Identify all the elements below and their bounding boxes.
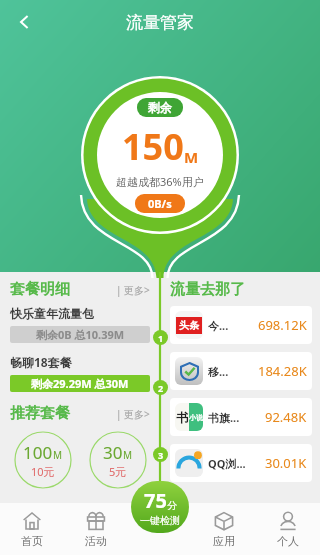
staticText: 一键检测 (140, 514, 180, 527)
staticText: 100 (23, 441, 53, 464)
staticText: 畅聊18套餐 (10, 354, 72, 370)
staticText: M (123, 448, 133, 462)
staticText: 5元 (109, 464, 127, 479)
staticText: 小说 (189, 413, 203, 422)
staticText: 活动 (85, 534, 107, 548)
staticText: 3 (158, 449, 164, 461)
staticText: M (184, 147, 199, 167)
button[interactable]: 75 (131, 481, 189, 533)
button[interactable]: 应用 (192, 503, 256, 555)
staticText: 应用 (213, 534, 235, 548)
staticText: 今... (208, 318, 229, 333)
button[interactable]: 推荐套餐 (10, 404, 150, 423)
staticText: 剩余0B 总10.39M (36, 327, 125, 342)
button[interactable]: 剩余29.29M 总30M (10, 375, 150, 392)
button[interactable]: QQ浏... (170, 444, 312, 482)
staticText: 30.01K (265, 454, 307, 472)
staticText: 移... (208, 364, 229, 379)
staticText: 剩余29.29M 总30M (31, 376, 129, 391)
button[interactable]: 0B/s (148, 196, 172, 211)
staticText: 698.12K (258, 316, 307, 334)
button[interactable]: 活动 (64, 503, 128, 555)
button[interactable]: 剩余0B 总10.39M (10, 326, 150, 343)
button[interactable]: 30 (85, 429, 150, 491)
staticText: 流量去那了 (170, 280, 245, 299)
staticText: 92.48K (265, 408, 307, 426)
staticText: 书旗... (208, 410, 240, 425)
button[interactable]: 首页 (0, 503, 64, 555)
staticText: 75 (144, 487, 167, 514)
staticText: 分 (167, 499, 177, 512)
staticText: QQ浏... (208, 456, 246, 471)
staticText: 首页 (21, 534, 43, 548)
staticText: 超越成都36%用户 (116, 174, 204, 189)
button[interactable]: 个人 (256, 503, 320, 555)
staticText: 推荐套餐 (10, 404, 70, 423)
staticText: 0B/s (148, 196, 172, 211)
staticText: 150 (122, 122, 184, 171)
button[interactable]: 100 (10, 429, 75, 491)
staticText: 流量管家 (126, 12, 194, 33)
staticText: 头条 (179, 319, 199, 332)
staticText: 书 (176, 410, 188, 425)
button[interactable]: Back (4, 2, 44, 42)
button[interactable]: 移... (170, 352, 312, 390)
staticText: M (53, 448, 63, 462)
button[interactable]: 套餐明细 (10, 280, 150, 299)
staticText: 30 (103, 441, 123, 464)
staticText: | 更多> (116, 407, 150, 421)
staticText: 1 (158, 332, 164, 344)
staticText: 10元 (31, 464, 55, 479)
staticText: | 更多> (116, 283, 150, 297)
staticText: 套餐明细 (10, 280, 70, 299)
staticText: 快乐童年流量包 (10, 306, 94, 321)
staticText: 剩余 (148, 100, 172, 115)
staticText: 184.28K (258, 362, 307, 380)
staticText: 个人 (277, 534, 299, 548)
button[interactable]: 书 (170, 398, 312, 436)
staticText: 2 (158, 382, 164, 394)
button[interactable]: 头条 (170, 306, 312, 344)
